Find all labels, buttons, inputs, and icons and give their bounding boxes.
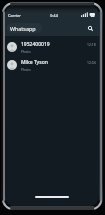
staticText: Whatsapp xyxy=(10,25,36,32)
staticText: 0:44 xyxy=(50,13,58,18)
button[interactable]: 1952400019 xyxy=(5,38,99,56)
button[interactable]: Whatsapp xyxy=(7,23,42,33)
staticText: Mike Tyson xyxy=(21,59,48,66)
staticText: 12:18 xyxy=(87,42,96,47)
button[interactable]: Mike Tyson xyxy=(5,56,99,74)
staticText: Carrier xyxy=(8,13,22,18)
staticText: Photo xyxy=(21,49,31,54)
button[interactable]: Search xyxy=(85,23,95,33)
staticText: 1952400019 xyxy=(21,41,50,48)
staticText: 12:04 xyxy=(87,60,96,65)
staticText: Photo xyxy=(21,67,31,72)
